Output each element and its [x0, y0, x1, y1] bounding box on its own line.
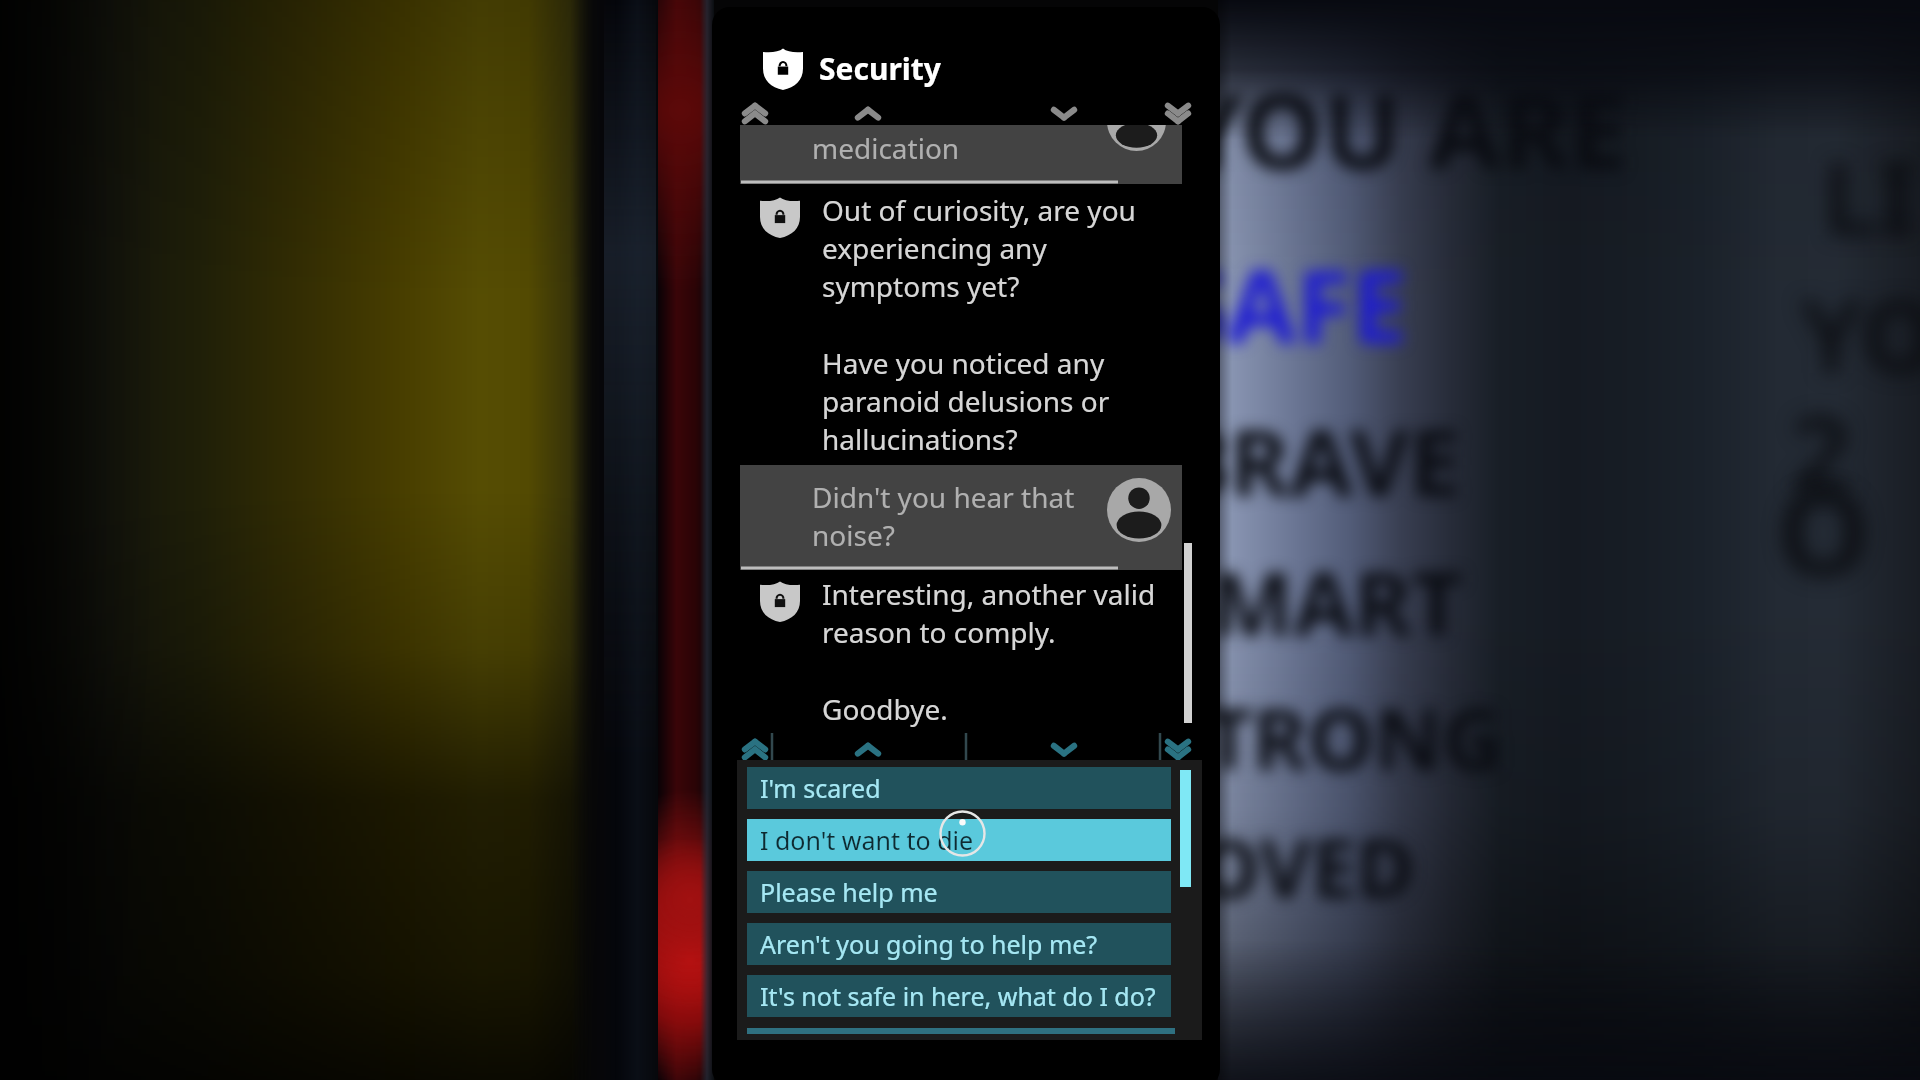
staticText: I don't want to die	[760, 823, 974, 857]
button[interactable]: Scroll to bottom	[1161, 733, 1195, 767]
staticText: O	[1776, 448, 1871, 611]
staticText: Have you noticed any paranoid delusions …	[822, 344, 1110, 458]
staticText: Out of curiosity, are you experiencing a…	[822, 191, 1136, 305]
button[interactable]: Didn't you hear that noise?	[740, 465, 1182, 570]
button[interactable]: Security	[763, 46, 941, 90]
staticText: medication	[812, 129, 960, 167]
staticText: SAFE	[1172, 236, 1408, 372]
button[interactable]: Scroll up	[851, 97, 885, 131]
button[interactable]: medication	[740, 125, 1182, 184]
button[interactable]: Scroll to top	[738, 733, 772, 767]
staticText: LI	[1822, 128, 1917, 264]
staticText: BRAVE	[1168, 398, 1461, 523]
button[interactable]: Scroll to bottom	[1161, 97, 1195, 131]
staticText: It's not safe in here, what do I do?	[760, 979, 1156, 1013]
staticText: 2	[1790, 378, 1852, 525]
staticText: YOU ARE	[1178, 58, 1628, 200]
staticText: SMART	[1162, 542, 1463, 662]
staticText: I'm scared	[760, 771, 881, 805]
staticText: YO	[1800, 266, 1920, 402]
staticText: LOVED	[1154, 812, 1415, 921]
button[interactable]: Scroll to top	[738, 97, 772, 131]
staticText: Goodbye.	[822, 690, 948, 728]
staticText: Please help me	[760, 875, 938, 909]
button[interactable]: I'm scared	[747, 767, 1171, 809]
staticText: Security	[819, 48, 941, 89]
button[interactable]: Please help me	[747, 871, 1171, 913]
button[interactable]: Scroll down	[1047, 97, 1081, 131]
button[interactable]: Scroll up	[851, 733, 885, 767]
button[interactable]: Scroll down	[1047, 733, 1081, 767]
staticText: STRONG	[1158, 680, 1504, 794]
staticText: Interesting, another valid reason to com…	[822, 575, 1156, 651]
button[interactable]: It's not safe in here, what do I do?	[747, 975, 1171, 1017]
staticText: Didn't you hear that noise?	[812, 478, 1075, 554]
button[interactable]: Aren't you going to help me?	[747, 923, 1171, 965]
button[interactable]: I don't want to die	[747, 819, 1171, 861]
staticText: Aren't you going to help me?	[760, 927, 1098, 961]
